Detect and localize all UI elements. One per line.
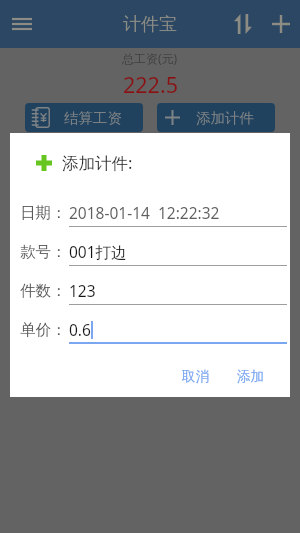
staticText: 结算工资 xyxy=(64,109,122,127)
staticText: 123 xyxy=(69,280,96,301)
staticText: 2018-01-14 12:22:32 xyxy=(69,202,220,223)
staticText: 添加 xyxy=(237,368,264,385)
button[interactable]: Sort xyxy=(224,0,262,48)
button[interactable]: 添加 xyxy=(228,364,273,389)
staticText: 0.6 xyxy=(69,319,91,340)
button[interactable]: 结算工资 xyxy=(25,103,143,132)
staticText: 222.5 xyxy=(123,70,178,99)
button[interactable]: Add xyxy=(262,0,300,48)
button[interactable]: 添加计件 xyxy=(157,103,275,132)
staticText: 添加计件 xyxy=(196,109,254,127)
staticText: 总工资(元) xyxy=(122,50,178,66)
staticText: 001打边 xyxy=(69,241,127,262)
staticText: 取消 xyxy=(182,368,209,385)
button[interactable]: Menu xyxy=(6,0,38,48)
staticText: 款号： xyxy=(20,242,67,262)
staticText: 日期： xyxy=(20,203,67,223)
staticText: 计件宝 xyxy=(123,13,177,36)
button[interactable]: 取消 xyxy=(173,364,218,389)
staticText: 单价： xyxy=(20,320,67,340)
staticText: 添加计件: xyxy=(62,151,133,174)
staticText: 件数： xyxy=(20,281,67,301)
